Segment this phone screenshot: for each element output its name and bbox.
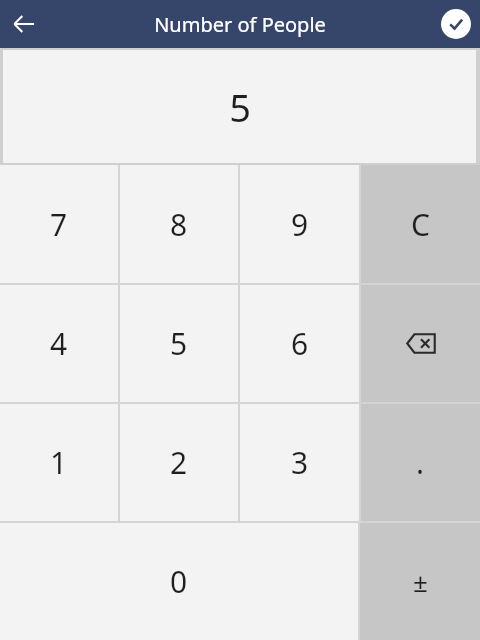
staticText: 9 xyxy=(291,204,309,245)
staticText: 0 xyxy=(170,561,188,602)
button[interactable]: 4 xyxy=(0,285,118,402)
staticText: . xyxy=(416,442,425,483)
staticText: ± xyxy=(413,564,428,599)
button[interactable]: 7 xyxy=(0,165,118,283)
button[interactable]: 0 xyxy=(0,523,358,640)
button[interactable]: 9 xyxy=(240,165,359,283)
button[interactable]: Confirm xyxy=(432,0,480,48)
button[interactable]: 6 xyxy=(240,285,359,402)
staticText: Number of People xyxy=(154,11,326,38)
staticText: 6 xyxy=(291,323,309,364)
staticText: C xyxy=(411,204,430,245)
button[interactable]: Back xyxy=(0,0,48,48)
button[interactable]: C xyxy=(361,165,480,283)
staticText: 2 xyxy=(170,442,188,483)
staticText: 4 xyxy=(50,323,68,364)
button[interactable]: Backspace xyxy=(361,285,480,402)
button[interactable]: 3 xyxy=(240,404,359,521)
staticText: 5 xyxy=(170,323,188,364)
button[interactable]: ± xyxy=(360,523,480,640)
button[interactable]: . xyxy=(361,404,480,521)
button[interactable]: 5 xyxy=(3,50,476,163)
button[interactable]: 5 xyxy=(120,285,238,402)
staticText: 8 xyxy=(170,204,188,245)
button[interactable]: 1 xyxy=(0,404,118,521)
button[interactable]: 8 xyxy=(120,165,238,283)
button[interactable]: 2 xyxy=(120,404,238,521)
staticText: 3 xyxy=(291,442,309,483)
staticText: 5 xyxy=(229,81,251,133)
staticText: 7 xyxy=(50,204,68,245)
staticText: 1 xyxy=(50,442,68,483)
